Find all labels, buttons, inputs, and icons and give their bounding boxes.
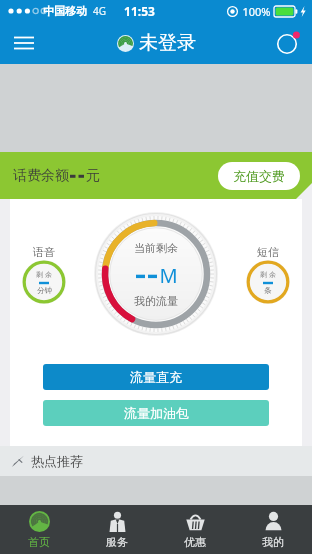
staticText: 服务	[106, 535, 128, 549]
staticText: 流量加油包	[124, 405, 189, 421]
button[interactable]: 我的	[234, 505, 312, 554]
staticText: 我的	[262, 535, 284, 549]
button[interactable]: 首页	[0, 505, 78, 554]
staticText: 首页	[28, 535, 50, 549]
button[interactable]: Menu	[6, 25, 42, 61]
staticText: 话费余额	[13, 167, 69, 185]
button[interactable]: Messages	[270, 25, 306, 61]
staticText: 剩 余	[260, 270, 276, 280]
staticText: 充值交费	[233, 168, 285, 184]
staticText: 未登录	[139, 31, 196, 55]
button[interactable]: 热点推荐	[11, 446, 312, 476]
staticText: 流量直充	[130, 369, 182, 385]
button[interactable]: 充值交费	[218, 162, 300, 190]
staticText: 条	[264, 286, 272, 295]
button[interactable]: 语音	[16, 245, 72, 304]
button[interactable]: 短信	[240, 245, 296, 304]
staticText: 剩 余	[36, 270, 52, 280]
button[interactable]: 流量加油包	[43, 400, 269, 426]
staticText: 分钟	[37, 286, 52, 295]
staticText: 100%	[242, 4, 271, 19]
staticText: 优惠	[184, 535, 206, 549]
staticText: 热点推荐	[31, 453, 83, 469]
staticText: 4G	[93, 4, 106, 18]
staticText: 语音	[33, 245, 55, 259]
staticText: 元	[86, 167, 100, 185]
button[interactable]: 服务	[78, 505, 156, 554]
staticText: 我的流量	[134, 294, 178, 308]
button[interactable]: 流量直充	[43, 364, 269, 390]
staticText: 短信	[257, 245, 279, 259]
staticText: M	[159, 262, 178, 289]
staticText: 11:53	[124, 3, 155, 19]
staticText: 中国移动	[43, 4, 87, 18]
button[interactable]: 优惠	[156, 505, 234, 554]
staticText: 当前剩余	[134, 241, 178, 255]
